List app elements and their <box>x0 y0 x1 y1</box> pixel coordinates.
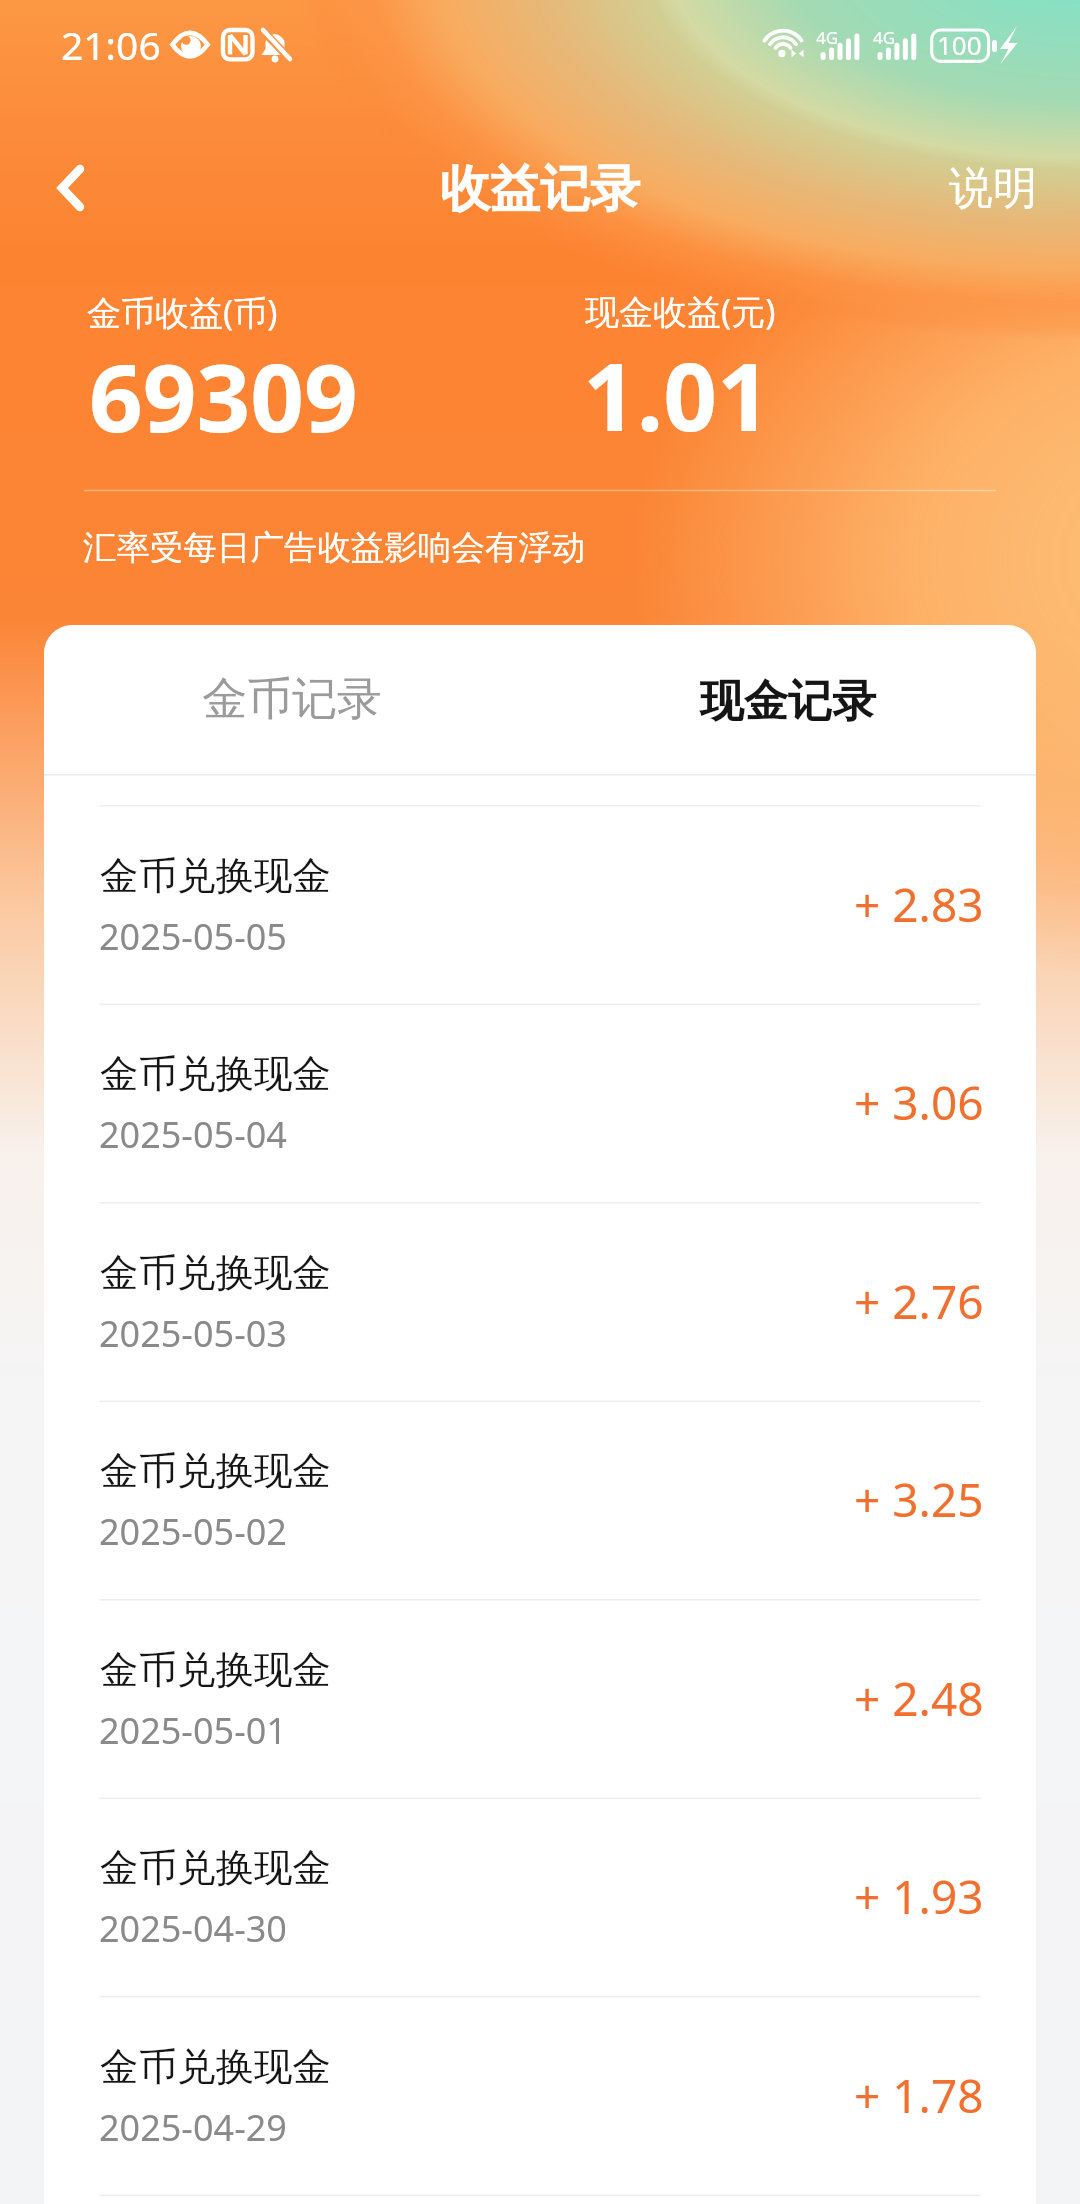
staticText: 2025-05-02 <box>99 1507 287 1556</box>
staticText: + 1.93 <box>854 1865 984 1928</box>
staticText: 金币兑换现金 <box>100 1646 331 1695</box>
staticText: 4G <box>816 26 839 49</box>
staticText: + 1.78 <box>854 2064 984 2127</box>
staticText: 4G <box>873 26 896 49</box>
staticText: + 2.76 <box>854 1270 984 1333</box>
button[interactable]: 金币兑换现金 <box>44 1402 1036 1599</box>
staticText: 金币兑换现金 <box>100 2043 331 2092</box>
staticText: 2025-05-01 <box>99 1706 287 1755</box>
button[interactable]: Back <box>20 140 120 236</box>
staticText: 现金收益(元) <box>585 288 776 334</box>
staticText: 2025-05-03 <box>99 1309 287 1358</box>
button[interactable]: 现金记录 <box>540 625 1036 774</box>
button[interactable]: 金币兑换现金 <box>44 1005 1036 1202</box>
staticText: 2025-05-04 <box>99 1110 287 1159</box>
staticText: 汇率受每日广告收益影响会有浮动 <box>83 527 586 569</box>
staticText: + 2.83 <box>854 873 984 936</box>
button[interactable]: 金币记录 <box>44 625 540 774</box>
button[interactable]: 金币兑换现金 <box>44 1204 1036 1401</box>
staticText: + 3.06 <box>854 1071 984 1134</box>
staticText: + 2.48 <box>854 1667 984 1730</box>
staticText: 金币兑换现金 <box>100 1844 331 1893</box>
staticText: 金币兑换现金 <box>100 1050 331 1099</box>
staticText: 21:06 <box>61 18 161 71</box>
staticText: 说明 <box>949 161 1037 216</box>
staticText: 金币兑换现金 <box>100 1447 331 1496</box>
staticText: 100 <box>937 27 982 62</box>
button[interactable]: 金币兑换现金 <box>44 1601 1036 1798</box>
staticText: 金币收益(币) <box>87 289 278 335</box>
staticText: + 3.25 <box>854 1468 984 1531</box>
staticText: 金币兑换现金 <box>100 1249 331 1298</box>
staticText: 2025-04-29 <box>99 2103 287 2152</box>
staticText: 1.01 <box>583 331 771 459</box>
staticText: 收益记录 <box>440 158 640 221</box>
button[interactable]: 说明 <box>938 152 1048 224</box>
staticText: 现金记录 <box>700 674 876 729</box>
button[interactable]: 金币兑换现金 <box>44 1998 1036 2195</box>
staticText: 金币记录 <box>202 671 382 728</box>
staticText: 69309 <box>89 332 358 460</box>
staticText: 金币兑换现金 <box>100 852 331 901</box>
button[interactable]: 金币兑换现金 <box>44 807 1036 1004</box>
button[interactable]: 金币兑换现金 <box>44 1799 1036 1996</box>
staticText: 2025-04-30 <box>99 1904 287 1953</box>
staticText: 2025-05-05 <box>99 912 287 961</box>
